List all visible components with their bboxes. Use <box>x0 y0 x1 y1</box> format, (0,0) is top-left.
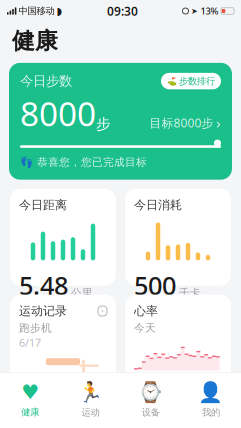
button[interactable]: 目标8000步 <box>149 113 221 133</box>
staticText: ➤ <box>191 6 198 16</box>
staticText: ♥ <box>21 381 39 403</box>
staticText: 运动记录 <box>19 304 67 318</box>
staticText: 4.68 <box>19 396 68 428</box>
button[interactable]: 运动记录 <box>10 295 116 407</box>
staticText: 心率 <box>134 304 158 318</box>
staticText: 今日消耗 <box>134 198 182 212</box>
staticText: 运动 <box>81 406 99 418</box>
button[interactable]: 今日消耗 <box>125 189 231 286</box>
staticText: 健康 <box>21 406 39 418</box>
staticText: 目标8000步 <box>149 115 213 131</box>
staticText: 5.48 <box>19 268 68 302</box>
staticText: 👣 <box>20 156 33 168</box>
button[interactable]: 今日距离 <box>10 189 116 286</box>
button[interactable]: 健康 <box>0 376 60 423</box>
staticText: 🏃 <box>78 381 103 404</box>
staticText: 8000 <box>20 91 96 136</box>
staticText: 步 <box>96 115 111 133</box>
staticText: 恭喜您，您已完成目标 <box>37 156 147 169</box>
staticText: 跑步机 <box>19 321 52 334</box>
staticText: 500 <box>134 268 176 302</box>
staticText: 健康 <box>12 27 58 55</box>
staticText: › <box>216 113 221 133</box>
staticText: 👤 <box>198 381 223 404</box>
staticText: 中国移动 <box>18 5 54 17</box>
button[interactable]: 我的 <box>181 376 241 423</box>
staticText: 今日距离 <box>19 198 67 212</box>
staticText: 设备 <box>142 406 160 418</box>
staticText: 80 <box>134 378 162 412</box>
staticText: 公里 <box>71 414 93 427</box>
staticText: ⌚ <box>138 381 163 404</box>
staticText: 13% <box>200 5 218 17</box>
button[interactable]: 运动 <box>60 376 120 423</box>
staticText: 今天 <box>134 321 156 334</box>
button[interactable]: 设备 <box>120 376 181 423</box>
staticText: 千卡 <box>179 286 201 300</box>
staticText: 今日步数 <box>20 73 72 89</box>
staticText: ◗ <box>56 5 62 17</box>
staticText: 6/17 <box>19 335 41 350</box>
button[interactable]: 心率 <box>125 295 231 407</box>
staticText: 步数排行 <box>179 75 215 87</box>
staticText: 09:30 <box>107 3 138 19</box>
button[interactable]: ⛳ <box>161 73 221 89</box>
staticText: ⛳ <box>167 76 177 86</box>
staticText: 公里 <box>71 286 93 300</box>
staticText: 我的 <box>202 406 220 418</box>
